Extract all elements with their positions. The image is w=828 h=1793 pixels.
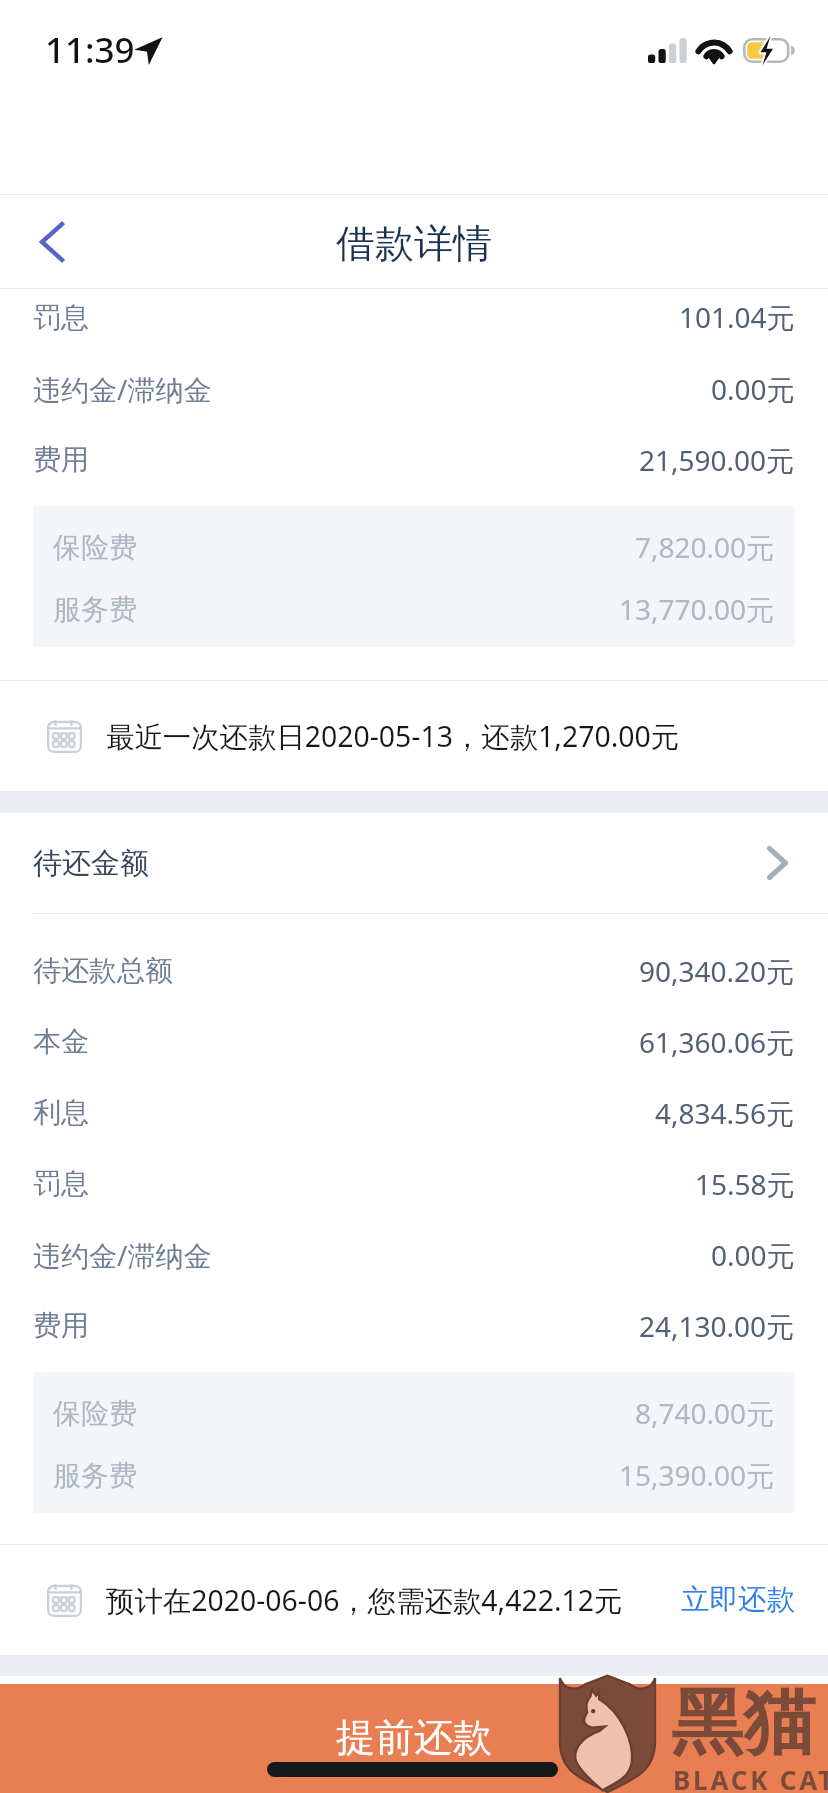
staticText: 13,770.00元 — [619, 590, 775, 628]
staticText: 0.00元 — [711, 1236, 795, 1274]
button[interactable]: 提前还款 — [0, 1684, 828, 1793]
staticText: BLACK CAT — [673, 1762, 828, 1793]
staticText: 7,820.00元 — [635, 528, 775, 566]
staticText: 24,130.00元 — [639, 1307, 795, 1345]
staticText: 保险费 — [53, 1396, 137, 1431]
staticText: 15.58元 — [695, 1165, 795, 1203]
staticText: 罚息 — [33, 1166, 89, 1201]
staticText: 罚息 — [33, 300, 89, 335]
staticText: 费用 — [33, 1308, 89, 1343]
staticText: 待还款总额 — [33, 953, 173, 988]
staticText: 提前还款 — [336, 1713, 492, 1762]
staticText: 服务费 — [53, 1458, 137, 1493]
staticText: 服务费 — [53, 592, 137, 627]
staticText: 21,590.00元 — [639, 441, 795, 479]
staticText: 保险费 — [53, 530, 137, 565]
staticText: 预计在2020-06-06，您需还款4,422.12元 — [106, 1581, 623, 1620]
staticText: 61,360.06元 — [639, 1023, 795, 1061]
staticText: 11:39 — [45, 26, 135, 74]
staticText: 借款详情 — [336, 219, 492, 268]
staticText: 101.04元 — [679, 298, 795, 336]
staticText: 违约金/滞纳金 — [33, 370, 212, 408]
staticText: 4,834.56元 — [655, 1094, 795, 1132]
staticText: 90,340.20元 — [639, 952, 795, 990]
button[interactable]: 立即还款 — [681, 1572, 795, 1628]
button[interactable]: Back — [0, 194, 110, 289]
button[interactable]: 待还金额 — [0, 813, 828, 913]
staticText: 8,740.00元 — [635, 1394, 775, 1432]
staticText: 违约金/滞纳金 — [33, 1236, 212, 1274]
staticText: 费用 — [33, 442, 89, 477]
staticText: 黑猫 — [671, 1678, 815, 1769]
staticText: 利息 — [33, 1095, 89, 1130]
staticText: 立即还款 — [681, 1582, 795, 1618]
staticText: 最近一次还款日2020-05-13，还款1,270.00元 — [106, 717, 680, 756]
staticText: 待还金额 — [33, 845, 149, 882]
staticText: 15,390.00元 — [619, 1456, 775, 1494]
staticText: 本金 — [33, 1024, 89, 1059]
staticText: 0.00元 — [711, 370, 795, 408]
